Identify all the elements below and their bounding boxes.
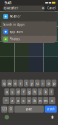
button[interactable]: Photos	[1, 35, 57, 43]
staticText: search	[47, 107, 55, 111]
button[interactable]: O	[8, 106, 13, 113]
staticText: 9:41	[4, 0, 11, 5]
button[interactable]: q	[2, 80, 6, 87]
staticText: space	[26, 107, 33, 111]
button[interactable]: k	[43, 88, 48, 95]
staticText: Search in Apps	[3, 23, 24, 26]
staticText: v	[28, 98, 30, 103]
staticText: l	[51, 89, 52, 94]
button[interactable]: n	[38, 97, 42, 104]
button[interactable]: Weather	[1, 11, 57, 21]
staticText: z	[11, 98, 13, 103]
button[interactable]: d	[15, 88, 20, 95]
staticText: m	[44, 98, 48, 103]
staticText: 123	[1, 107, 7, 111]
staticText: o	[47, 80, 49, 86]
staticText: d	[17, 89, 19, 94]
staticText: x	[51, 98, 53, 103]
staticText: g	[28, 89, 30, 94]
button[interactable]: t	[24, 80, 29, 87]
staticText: w	[8, 80, 11, 86]
staticText: Photos	[10, 37, 20, 41]
button[interactable]: w	[7, 80, 12, 87]
button[interactable]: z	[10, 97, 15, 104]
button[interactable]: 123	[1, 106, 7, 113]
staticText: u	[36, 80, 38, 86]
staticText: r	[20, 80, 22, 86]
staticText: Weather	[10, 15, 21, 18]
button[interactable]: o	[46, 80, 51, 87]
button[interactable]: h	[32, 88, 37, 95]
button[interactable]: e	[13, 80, 17, 87]
staticText: Cancel	[47, 6, 56, 10]
staticText: h	[34, 89, 36, 94]
button[interactable]: Cancel	[47, 5, 57, 11]
button[interactable]: g	[27, 88, 31, 95]
button[interactable]: c	[21, 97, 26, 104]
staticText: weather	[7, 6, 18, 10]
staticText: c	[22, 98, 24, 103]
button[interactable]: m	[43, 97, 48, 104]
staticText: n	[39, 98, 41, 103]
button[interactable]: i	[40, 80, 45, 87]
staticText: k	[45, 89, 47, 94]
staticText: App Store	[10, 30, 24, 33]
button[interactable]: r	[18, 80, 23, 87]
button[interactable]: space	[14, 106, 44, 113]
button[interactable]: search	[45, 106, 57, 113]
staticText: a	[6, 89, 8, 94]
staticText: j	[40, 89, 41, 94]
staticText: e	[14, 80, 16, 86]
button[interactable]: l	[49, 88, 54, 95]
button[interactable]: ^	[3, 97, 9, 104]
button[interactable]: a	[4, 88, 9, 95]
button[interactable]: f	[21, 88, 26, 95]
button[interactable]: App Store	[1, 28, 57, 35]
button[interactable]: y	[29, 80, 34, 87]
button[interactable]: v	[27, 97, 31, 104]
staticText: b	[34, 98, 36, 103]
button[interactable]: b	[32, 97, 37, 104]
button[interactable]: p	[52, 80, 56, 87]
staticText: q	[3, 80, 5, 86]
staticText: t	[26, 80, 27, 86]
staticText: s	[11, 89, 13, 94]
staticText: f	[23, 89, 24, 94]
button[interactable]: j	[38, 88, 42, 95]
staticText: ^	[5, 98, 7, 103]
button[interactable]: u	[35, 80, 40, 87]
staticText: p	[53, 80, 55, 86]
button[interactable]: x	[49, 97, 55, 104]
staticText: i	[42, 80, 43, 86]
button[interactable]: s	[10, 88, 15, 95]
staticText: x	[17, 98, 19, 103]
staticText: O	[10, 107, 12, 111]
staticText: y	[31, 80, 33, 86]
button[interactable]: x	[15, 97, 20, 104]
